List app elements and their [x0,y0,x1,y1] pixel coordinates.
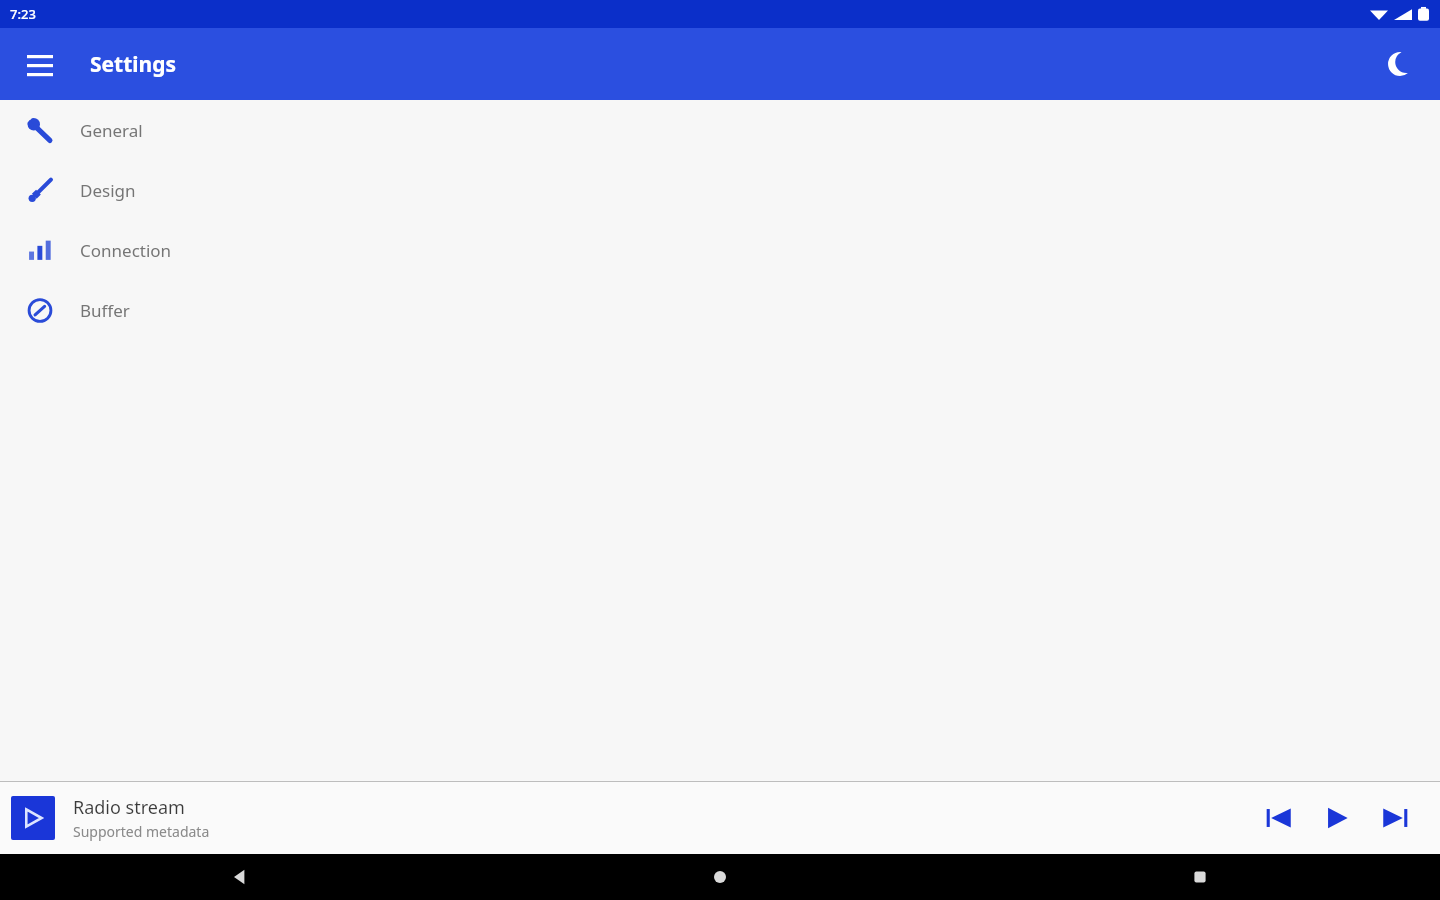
staticText: 7:23 [10,5,36,23]
button[interactable]: Previous track [1250,782,1308,854]
button[interactable]: Back [0,854,480,900]
staticText: General [80,119,143,142]
staticText: Supported metadata [73,822,210,841]
staticText: Settings [90,50,177,79]
button[interactable]: Next track [1366,782,1424,854]
staticText: Connection [80,239,172,262]
button[interactable]: Recent apps [960,854,1440,900]
button[interactable]: Buffer [0,280,1440,340]
button[interactable]: Play [1308,782,1366,854]
staticText: Radio stream [73,795,185,820]
button[interactable]: Home [480,854,960,900]
staticText: Design [80,179,136,202]
button[interactable]: General [0,100,1440,160]
staticText: Buffer [80,299,130,322]
button[interactable]: Toggle dark mode [1374,38,1426,90]
button[interactable]: Album art [11,796,55,840]
button[interactable]: Open navigation menu [14,38,66,90]
button[interactable]: Connection [0,220,1440,280]
button[interactable]: Design [0,160,1440,220]
